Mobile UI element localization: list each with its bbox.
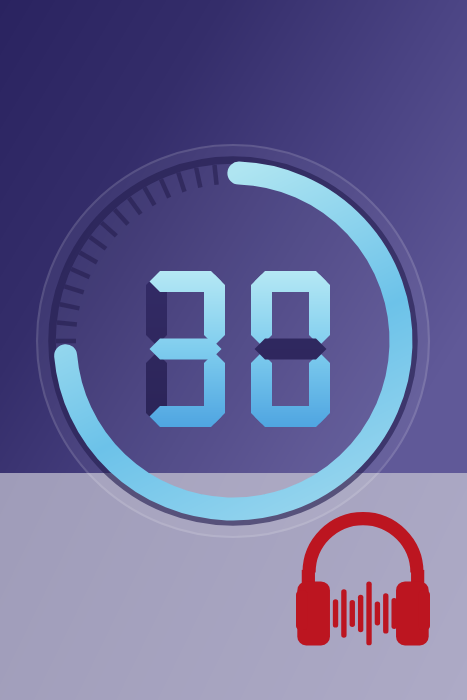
- button[interactable]: Sleep timer, 30 seconds remaining: [0, 0, 467, 700]
